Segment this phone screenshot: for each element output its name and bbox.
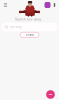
button[interactable]: Menu <box>1 0 9 9</box>
button[interactable]: Search <box>20 32 39 38</box>
staticText: type song... <box>10 26 25 29</box>
button[interactable]: Account <box>43 0 51 9</box>
button[interactable]: Add song <box>45 89 55 99</box>
staticText: Search any song... <box>15 18 44 21</box>
staticText: Search <box>25 33 33 36</box>
button[interactable]: More options <box>51 0 57 9</box>
